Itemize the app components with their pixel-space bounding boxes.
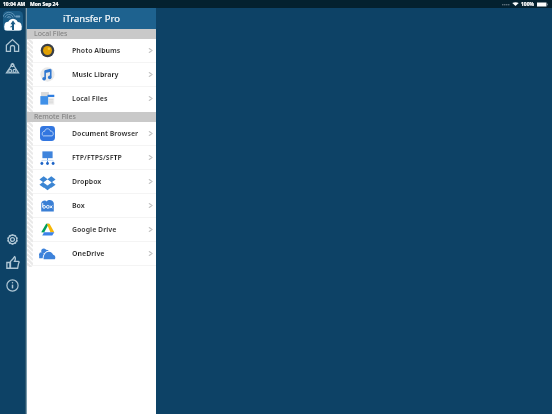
staticText: Mon Sep 24 [30, 1, 59, 8]
button[interactable]: About [4, 277, 21, 294]
button[interactable]: Box [27, 194, 156, 217]
button[interactable]: Google Drive [27, 218, 156, 241]
button[interactable]: Local Files [27, 87, 156, 110]
staticText: Google Drive [72, 225, 117, 234]
staticText: Local Files [72, 94, 108, 103]
staticText: iTransfer Pro [63, 12, 120, 25]
staticText: 10:04 AM [3, 1, 26, 8]
staticText: 100% [521, 1, 535, 8]
staticText: FTP/FTPS/SFTP [72, 153, 122, 162]
button[interactable]: Dropbox [27, 170, 156, 193]
button[interactable]: Settings [4, 231, 21, 248]
button[interactable]: Photo Albums [27, 39, 156, 62]
button[interactable]: FTP/FTPS/SFTP [27, 146, 156, 169]
staticText: Local Files [34, 29, 68, 39]
button[interactable]: Document Browser [27, 122, 156, 145]
staticText: Remote Files [34, 112, 76, 122]
staticText: OneDrive [72, 249, 105, 258]
staticText: Document Browser [72, 129, 139, 138]
button[interactable]: iTransfer Pro [3, 11, 23, 31]
button[interactable]: Home [4, 37, 21, 54]
staticText: Dropbox [72, 177, 102, 186]
staticText: Music Library [72, 70, 119, 79]
staticText: Box [72, 201, 85, 210]
button[interactable]: Music Library [27, 63, 156, 86]
button[interactable]: OneDrive [27, 242, 156, 265]
button[interactable]: Transfers [4, 60, 21, 77]
staticText: Photo Albums [72, 46, 121, 55]
button[interactable]: Rate this app [4, 254, 21, 271]
